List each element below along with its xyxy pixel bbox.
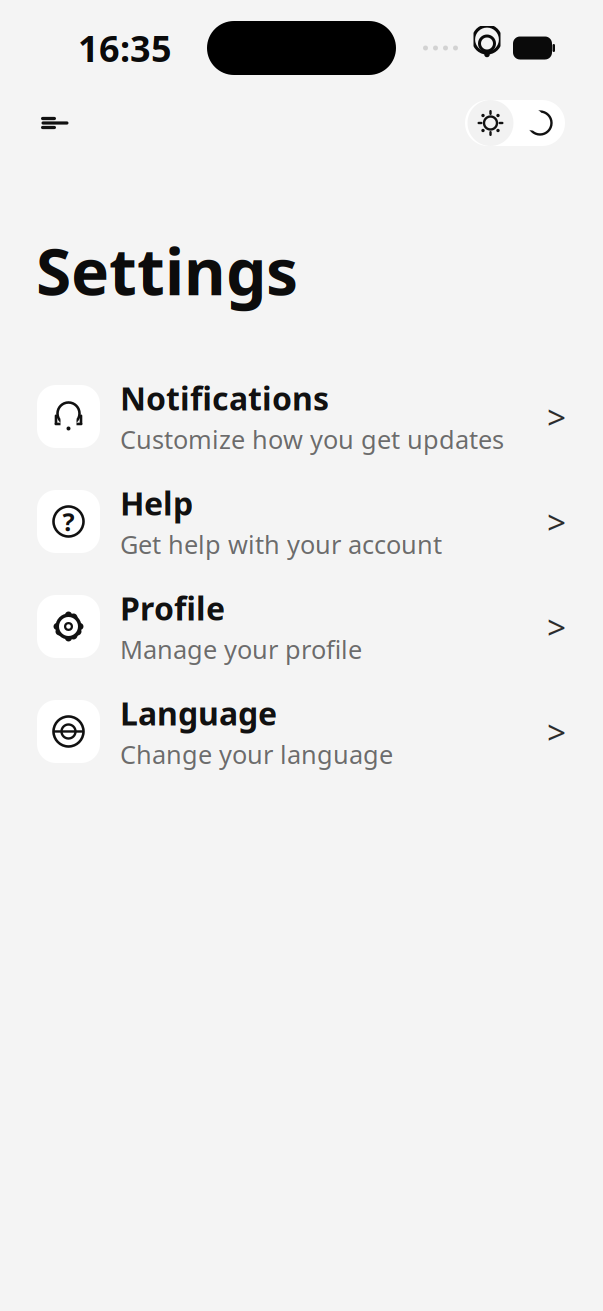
staticText: 16:35 bbox=[78, 24, 172, 72]
button[interactable]: Profile bbox=[0, 595, 603, 658]
staticText: Settings bbox=[36, 228, 298, 313]
staticText: > bbox=[547, 709, 566, 754]
button[interactable]: ? bbox=[0, 490, 603, 553]
button[interactable]: Dark appearance bbox=[515, 100, 564, 146]
button[interactable]: Back bbox=[31, 99, 79, 147]
staticText: Manage your profile bbox=[120, 632, 362, 666]
staticText: Customize how you get updates bbox=[120, 422, 504, 456]
button[interactable]: Notifications bbox=[0, 385, 603, 448]
staticText: > bbox=[547, 604, 566, 649]
button[interactable]: Language bbox=[0, 700, 603, 763]
staticText: Language bbox=[120, 692, 277, 734]
staticText: > bbox=[547, 499, 566, 544]
staticText: Help bbox=[120, 482, 193, 524]
staticText: ? bbox=[62, 505, 74, 538]
staticText: > bbox=[547, 394, 566, 439]
staticText: Notifications bbox=[120, 377, 329, 419]
staticText: Profile bbox=[120, 587, 225, 629]
staticText: Get help with your account bbox=[120, 527, 442, 561]
staticText: Change your language bbox=[120, 737, 393, 771]
button[interactable]: Light appearance bbox=[465, 100, 515, 146]
